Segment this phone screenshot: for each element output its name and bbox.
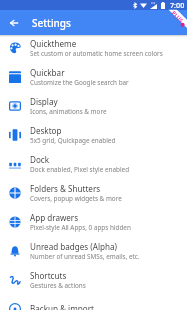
staticText: Gestures & actions	[30, 281, 86, 290]
staticText: App drawers	[30, 212, 79, 223]
button[interactable]: Unread badges (Alpha)	[0, 236, 187, 265]
staticText: Desktop	[30, 125, 62, 136]
staticText: Number of unread SMSs, emails, etc.	[30, 252, 140, 261]
button[interactable]: Desktop	[0, 120, 187, 149]
button[interactable]: Quickbar	[0, 62, 187, 91]
button[interactable]: Folders & Shutters	[0, 178, 187, 207]
staticText: Quickbar	[30, 67, 65, 78]
staticText: Unread badges (Alpha)	[30, 241, 117, 252]
button[interactable]: Shortcuts	[0, 265, 187, 294]
staticText: Set custom or automatic home screen colo…	[30, 49, 163, 58]
button[interactable]: Quicktheme	[0, 33, 187, 62]
button[interactable]: Back	[0, 10, 25, 35]
staticText: 7:00	[170, 0, 185, 10]
button[interactable]: App drawers	[0, 207, 187, 236]
staticText: Dock	[30, 154, 50, 165]
staticText: Icons, animations & more	[30, 107, 107, 116]
staticText: Display	[30, 96, 58, 107]
staticText: Settings	[32, 16, 71, 30]
staticText: Backup & import	[30, 303, 94, 310]
button[interactable]: Backup & import	[0, 294, 187, 310]
button[interactable]: Dock	[0, 149, 187, 178]
staticText: PLUS	[171, 9, 185, 24]
button[interactable]: Display	[0, 91, 187, 120]
staticText: Quicktheme	[30, 38, 77, 49]
staticText: Covers, popup widgets & more	[30, 194, 122, 203]
staticText: 5x5 grid, Quickpage enabled	[30, 136, 116, 145]
staticText: Shortcuts	[30, 270, 67, 281]
staticText: Pixel-style All Apps, 0 apps hidden	[30, 223, 131, 232]
staticText: Folders & Shutters	[30, 183, 101, 194]
staticText: Customize the Google search bar	[30, 78, 129, 87]
staticText: Dock enabled, Pixel style enabled	[30, 165, 130, 174]
